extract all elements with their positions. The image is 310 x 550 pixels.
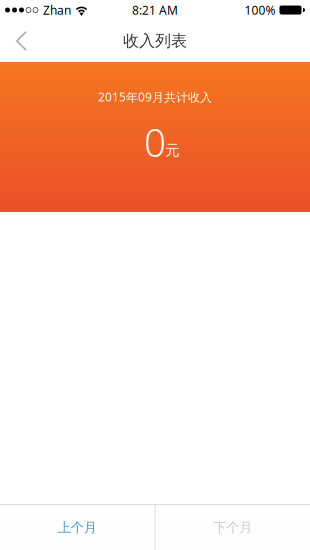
staticText: 2015年09月共计收入 (98, 89, 212, 105)
staticText: 元 (165, 141, 180, 159)
staticText: 100% (244, 2, 275, 18)
button[interactable]: Back (0, 20, 43, 62)
button[interactable]: 上个月 (0, 505, 154, 550)
staticText: 收入列表 (123, 31, 187, 51)
staticText: 上个月 (58, 519, 97, 536)
staticText: 下个月 (213, 519, 252, 536)
staticText: 8:21 AM (132, 2, 178, 18)
staticText: Zhan (43, 2, 71, 18)
staticText: 0 (144, 116, 166, 168)
button[interactable]: 下个月 (155, 505, 310, 550)
